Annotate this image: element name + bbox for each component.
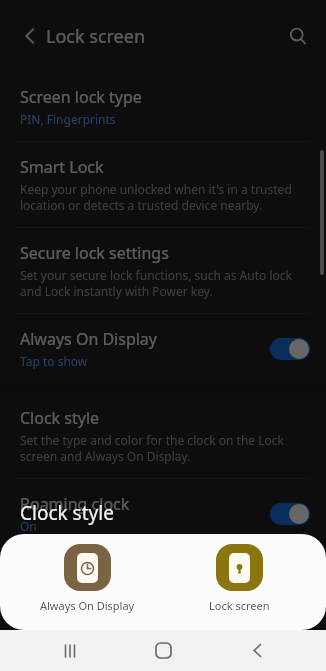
button[interactable]: Smart Lock bbox=[0, 142, 326, 227]
staticText: Get quick access to useful information o… bbox=[20, 588, 304, 604]
button[interactable]: Clock style bbox=[0, 393, 326, 478]
staticText: Roaming clock bbox=[20, 493, 130, 515]
staticText: Clock style bbox=[20, 500, 114, 526]
staticText: Lock screen bbox=[209, 598, 270, 613]
staticText: Lock screen bbox=[46, 24, 146, 49]
button[interactable]: Always On Display bbox=[22, 542, 152, 613]
button[interactable]: Clock style bbox=[0, 549, 326, 618]
button[interactable]: Always On Display bbox=[0, 314, 326, 383]
button[interactable]: Search bbox=[276, 14, 320, 58]
staticText: Smart Lock bbox=[20, 156, 104, 178]
staticText: Tap to show bbox=[20, 353, 88, 369]
staticText: Set the type and color for the clock on … bbox=[20, 432, 310, 464]
button[interactable]: Secure lock settings bbox=[0, 228, 326, 313]
staticText: Clock style bbox=[20, 407, 100, 429]
button[interactable]: Back bbox=[233, 630, 281, 671]
button[interactable]: Back bbox=[8, 14, 52, 58]
button[interactable]: Screen lock type bbox=[0, 72, 326, 141]
button[interactable]: Roaming clock bbox=[0, 479, 326, 548]
staticText: Screen lock type bbox=[20, 86, 142, 108]
staticText: Secure lock settings bbox=[20, 242, 169, 264]
staticText: Clock style bbox=[20, 563, 100, 585]
staticText: Set your secure lock functions, such as … bbox=[20, 267, 310, 299]
button[interactable] bbox=[270, 503, 310, 525]
staticText: Always On Display bbox=[20, 328, 158, 350]
button[interactable] bbox=[270, 338, 310, 360]
staticText: On bbox=[20, 518, 37, 534]
button[interactable]: Lock screen bbox=[174, 542, 304, 613]
button[interactable]: Home bbox=[139, 630, 187, 671]
staticText: Always On Display bbox=[40, 598, 135, 613]
button[interactable]: Recents bbox=[46, 630, 94, 671]
staticText: PIN, Fingerprints bbox=[20, 111, 116, 127]
staticText: Keep your phone unlocked when it's in a … bbox=[20, 181, 310, 213]
